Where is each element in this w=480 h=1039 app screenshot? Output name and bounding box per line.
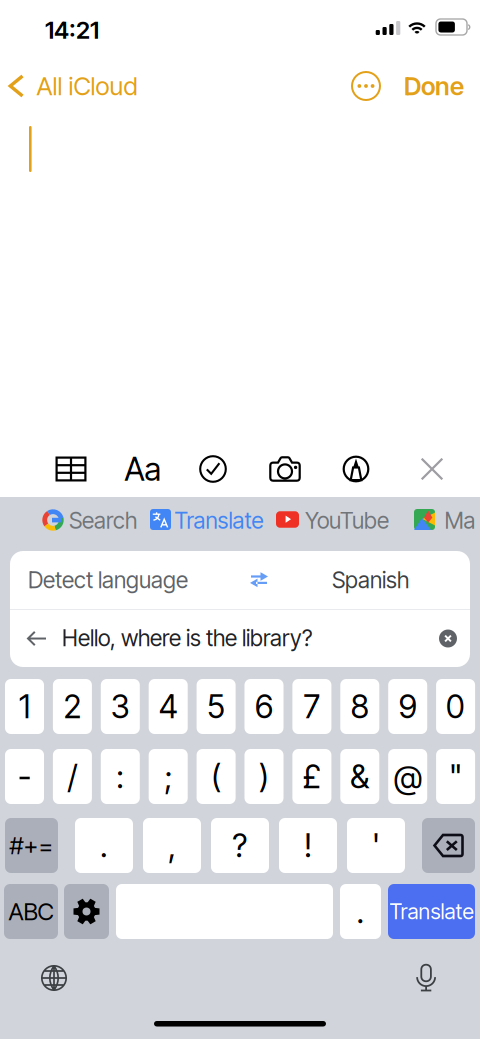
staticText: ABC <box>8 897 53 926</box>
button[interactable]: Delete <box>422 818 475 873</box>
staticText: Ma <box>444 507 475 534</box>
staticText: & <box>350 757 369 796</box>
button[interactable]: ? <box>211 818 269 873</box>
staticText: / <box>67 757 77 796</box>
button[interactable]: Switch keyboard <box>26 955 82 1001</box>
staticText: ? <box>232 826 247 865</box>
button[interactable]: £ <box>292 749 331 804</box>
button[interactable]: Spanish <box>332 551 470 609</box>
staticText: - <box>18 757 31 796</box>
button[interactable]: 7 <box>292 679 331 734</box>
button[interactable]: 8 <box>340 679 379 734</box>
staticText: Search <box>69 507 137 534</box>
button[interactable]: 6 <box>244 679 283 734</box>
button[interactable]: . <box>75 818 133 873</box>
button[interactable]: Aa <box>110 443 176 495</box>
staticText: @ <box>394 757 422 796</box>
button[interactable]: 3 <box>101 679 140 734</box>
button[interactable]: Done <box>396 62 472 110</box>
staticText: 7 <box>303 687 320 726</box>
staticText: " <box>449 757 462 796</box>
button[interactable]: Camera <box>252 443 318 495</box>
button[interactable]: 5 <box>197 679 236 734</box>
button[interactable]: & <box>340 749 379 804</box>
button[interactable]: Swap languages <box>231 551 287 609</box>
staticText: #+= <box>9 831 53 860</box>
button[interactable]: All iCloud <box>0 62 140 110</box>
staticText: ! <box>304 826 312 865</box>
button[interactable]: Search <box>42 506 137 534</box>
button[interactable]: Translate <box>150 506 262 534</box>
button[interactable]: Settings <box>64 884 109 939</box>
staticText: 6 <box>255 687 273 726</box>
staticText: 0 <box>446 687 465 726</box>
button[interactable]: ( <box>197 749 236 804</box>
button[interactable]: Back <box>14 610 60 667</box>
staticText: All iCloud <box>36 71 137 101</box>
button[interactable]: YouTube <box>276 506 390 534</box>
button[interactable]: ; <box>149 749 188 804</box>
staticText: 9 <box>399 687 417 726</box>
staticText: YouTube <box>305 507 389 534</box>
staticText: Hello, where is the library? <box>62 624 312 652</box>
button[interactable]: More <box>342 62 390 110</box>
button[interactable]: Table <box>38 443 104 495</box>
staticText: 8 <box>351 687 369 726</box>
button[interactable]: 0 <box>436 679 475 734</box>
button[interactable]: Ma <box>414 506 480 534</box>
button[interactable]: Detect language <box>28 551 220 609</box>
button[interactable]: Clear <box>424 610 472 667</box>
button[interactable]: 4 <box>149 679 188 734</box>
button[interactable]: 2 <box>53 679 92 734</box>
button[interactable]: " <box>436 749 475 804</box>
button[interactable]: Translate <box>388 884 475 939</box>
button[interactable]: Markup <box>323 443 389 495</box>
staticText: £ <box>302 757 321 796</box>
button[interactable]: , <box>143 818 201 873</box>
button[interactable]: : <box>101 749 140 804</box>
staticText: Aa <box>124 450 161 488</box>
button[interactable]: @ <box>388 749 427 804</box>
staticText: 3 <box>111 687 130 726</box>
staticText: ' <box>372 826 380 865</box>
button[interactable]: ) <box>244 749 283 804</box>
button[interactable]: Checklist <box>180 443 246 495</box>
button[interactable]: Close <box>404 443 460 495</box>
staticText: . <box>100 826 108 865</box>
staticText: Detect language <box>28 566 188 594</box>
staticText: Translate <box>389 899 473 924</box>
button[interactable]: ABC <box>4 884 58 939</box>
button[interactable]: #+= <box>5 818 58 873</box>
staticText: 4 <box>159 687 178 726</box>
staticText: ; <box>164 757 172 796</box>
staticText: 1 <box>19 687 30 726</box>
staticText: 5 <box>207 687 225 726</box>
button[interactable]: ! <box>279 818 337 873</box>
button[interactable]: Dictate <box>398 955 454 1001</box>
button[interactable]: / <box>53 749 92 804</box>
staticText: Spanish <box>332 566 409 594</box>
button[interactable]: . <box>340 884 381 939</box>
staticText: ) <box>259 757 269 796</box>
button[interactable]: - <box>5 749 44 804</box>
staticText: Translate <box>174 507 263 534</box>
button[interactable]: ' <box>347 818 405 873</box>
button[interactable]: 1 <box>5 679 44 734</box>
staticText: : <box>116 757 124 796</box>
staticText: 2 <box>63 687 81 726</box>
staticText: , <box>168 826 176 865</box>
staticText: 14:21 <box>45 15 99 44</box>
staticText: ( <box>211 757 221 796</box>
staticText: Done <box>404 71 464 101</box>
button[interactable]: 9 <box>388 679 427 734</box>
staticText: . <box>356 892 364 931</box>
